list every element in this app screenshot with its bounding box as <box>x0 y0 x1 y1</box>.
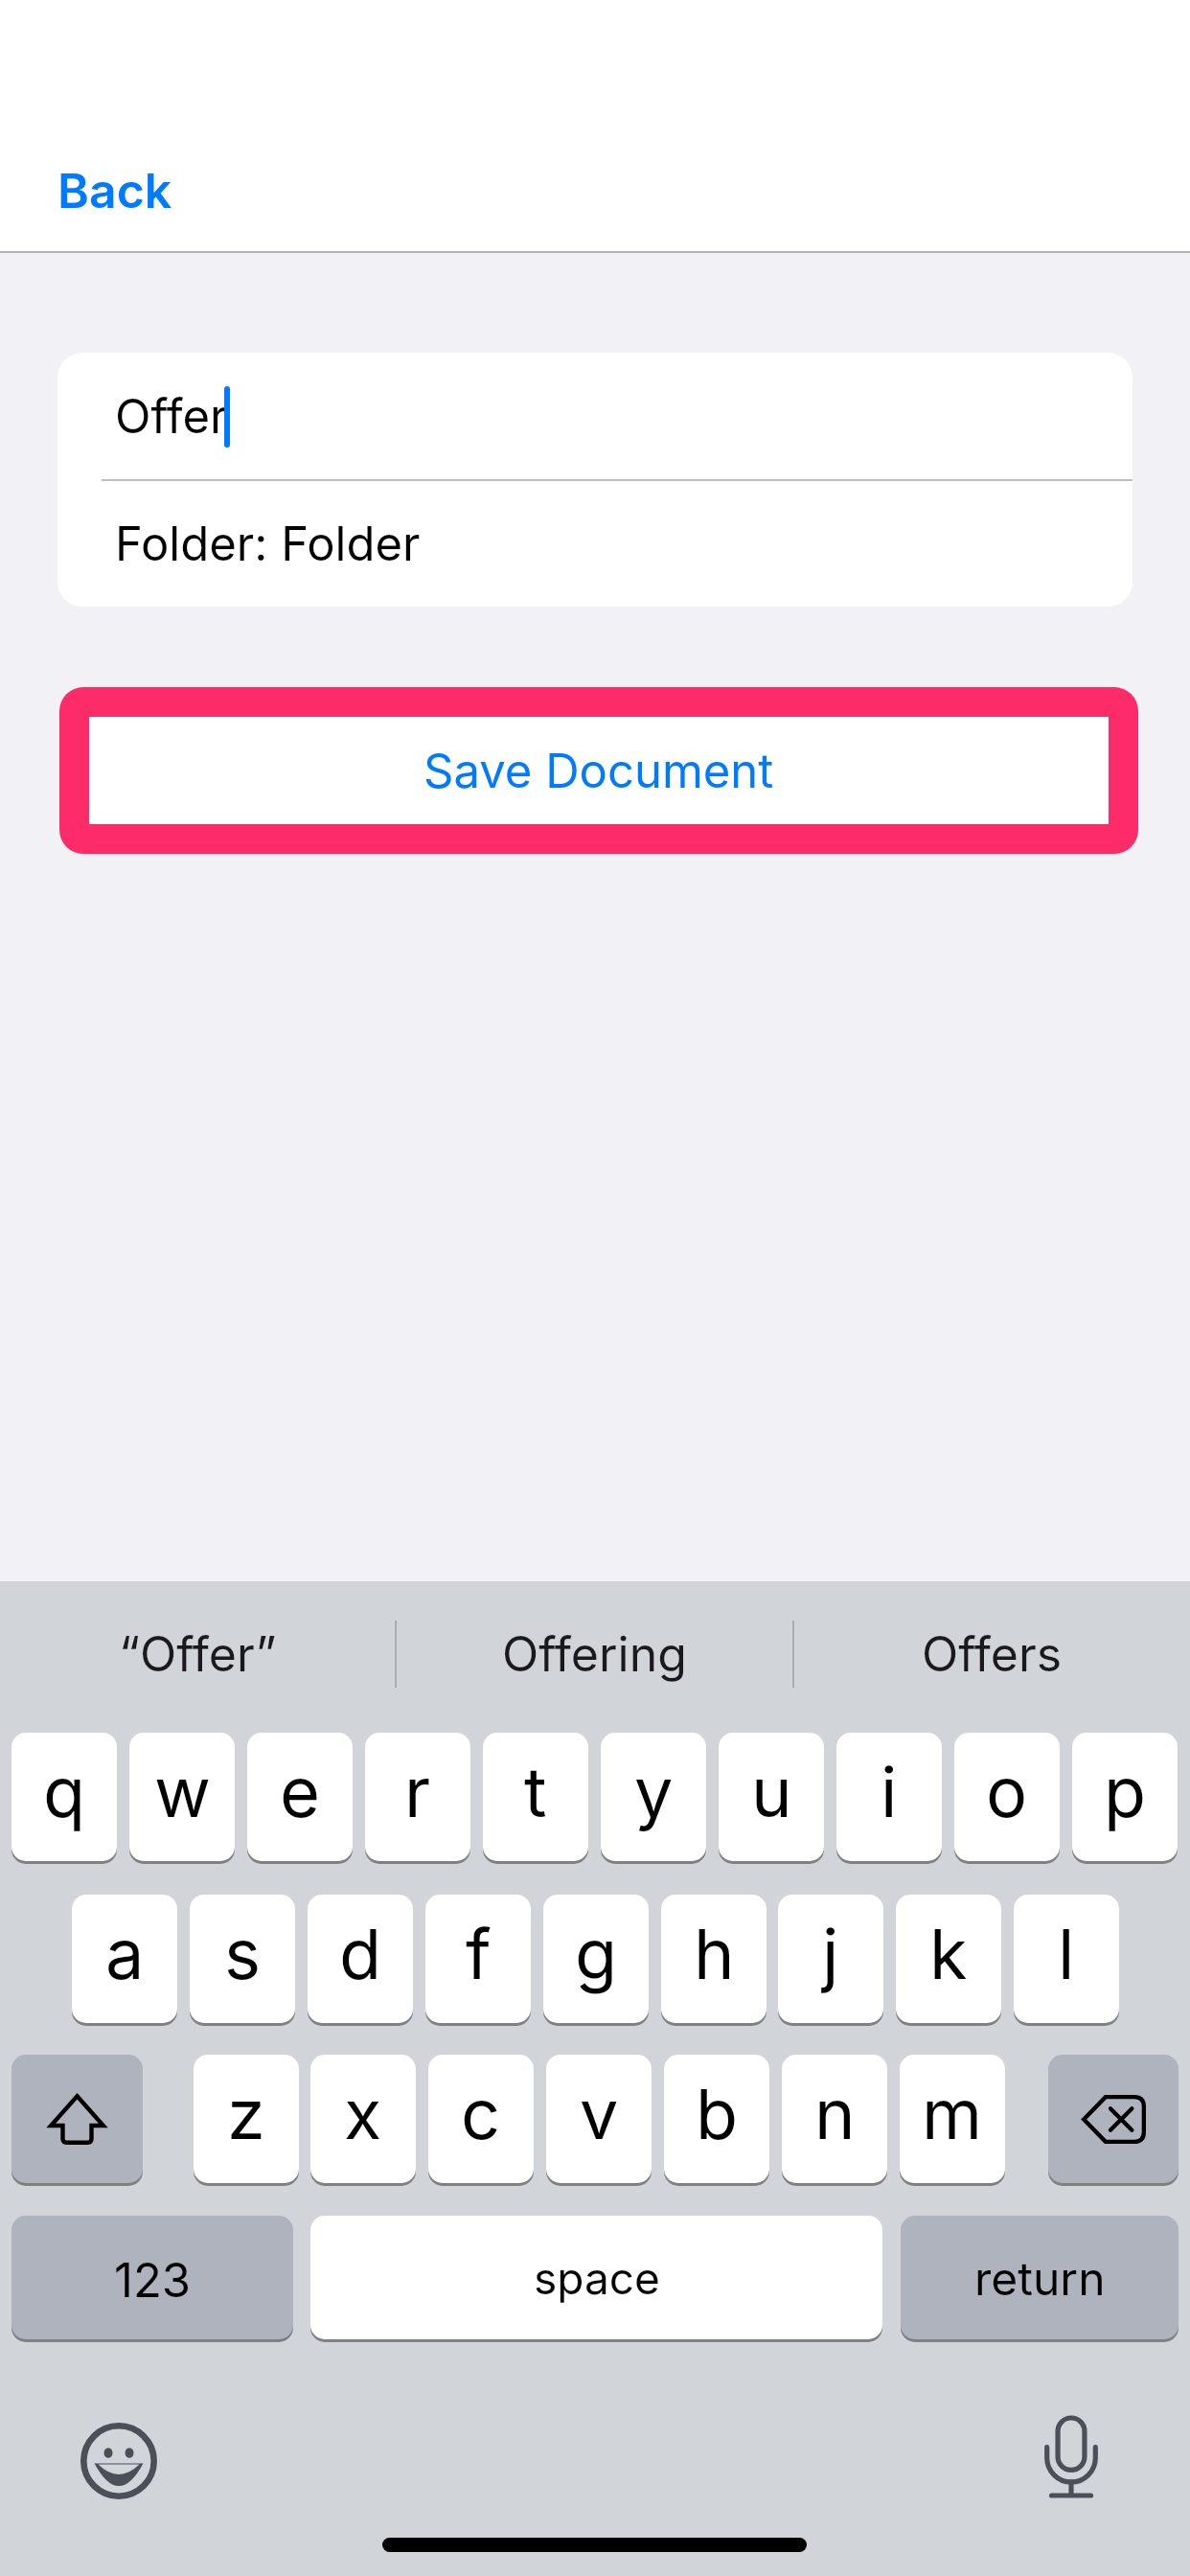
button[interactable]: x <box>310 2055 416 2183</box>
button[interactable]: “Offer” <box>0 1581 395 1727</box>
staticText: Save Document <box>423 743 774 799</box>
staticText: Offering <box>502 1625 687 1683</box>
staticText: c <box>461 2072 501 2155</box>
button[interactable]: z <box>194 2055 299 2183</box>
button[interactable]: i <box>836 1733 942 1861</box>
button[interactable]: Dictation <box>1035 2414 1108 2502</box>
button[interactable]: l <box>1014 1895 1119 2023</box>
staticText: Offer <box>115 388 228 445</box>
button[interactable]: Folder: Folder <box>57 481 1133 607</box>
button[interactable]: Save Document <box>59 687 1138 854</box>
staticText: l <box>1058 1912 1075 1995</box>
button[interactable]: c <box>428 2055 534 2183</box>
button[interactable]: Back <box>44 152 186 229</box>
button[interactable]: Emoji keyboard <box>73 2415 165 2507</box>
staticText: “Offer” <box>119 1625 277 1683</box>
staticText: d <box>339 1912 382 1995</box>
button[interactable]: e <box>247 1733 353 1861</box>
button[interactable]: Offers <box>794 1581 1190 1727</box>
staticText: n <box>814 2072 856 2155</box>
staticText: b <box>696 2072 739 2155</box>
button[interactable]: Shift <box>11 2055 143 2183</box>
staticText: Folder: Folder <box>115 516 421 572</box>
button[interactable]: d <box>308 1895 413 2023</box>
button[interactable]: p <box>1072 1733 1178 1861</box>
staticText: u <box>751 1750 792 1833</box>
button[interactable]: r <box>365 1733 470 1861</box>
staticText: Offers <box>922 1625 1063 1683</box>
staticText: v <box>580 2072 619 2155</box>
button[interactable]: n <box>782 2055 887 2183</box>
staticText: i <box>881 1750 898 1833</box>
button[interactable]: m <box>900 2055 1005 2183</box>
staticText: j <box>822 1912 839 1995</box>
staticText: return <box>974 2250 1106 2306</box>
button[interactable]: b <box>664 2055 769 2183</box>
staticText: a <box>105 1912 145 1995</box>
staticText: space <box>534 2251 660 2305</box>
button[interactable]: s <box>190 1895 295 2023</box>
staticText: z <box>227 2072 265 2155</box>
button[interactable]: return <box>901 2216 1179 2339</box>
staticText: q <box>43 1750 86 1833</box>
staticText: m <box>922 2072 983 2155</box>
staticText: o <box>986 1750 1028 1833</box>
button[interactable]: q <box>11 1733 117 1861</box>
button[interactable]: k <box>896 1895 1001 2023</box>
button[interactable]: space <box>310 2216 882 2339</box>
button[interactable]: h <box>661 1895 767 2023</box>
button[interactable]: Backspace <box>1048 2055 1179 2183</box>
button[interactable]: u <box>719 1733 824 1861</box>
staticText: p <box>1104 1750 1147 1833</box>
staticText: w <box>154 1750 211 1833</box>
button[interactable]: f <box>425 1895 531 2023</box>
staticText: 123 <box>114 2252 192 2309</box>
button[interactable]: 123 <box>11 2216 293 2339</box>
button[interactable]: Offer <box>57 353 1133 479</box>
button[interactable]: y <box>601 1733 706 1861</box>
staticText: s <box>224 1912 262 1995</box>
button[interactable]: w <box>129 1733 235 1861</box>
staticText: Back <box>57 162 172 219</box>
button[interactable]: o <box>954 1733 1060 1861</box>
button[interactable]: t <box>483 1733 588 1861</box>
staticText: h <box>694 1912 735 1995</box>
button[interactable]: j <box>778 1895 883 2023</box>
button[interactable]: v <box>546 2055 652 2183</box>
staticText: r <box>404 1750 431 1833</box>
staticText: e <box>280 1750 320 1833</box>
staticText: k <box>929 1912 968 1995</box>
staticText: f <box>466 1912 492 1995</box>
button[interactable]: g <box>543 1895 649 2023</box>
button[interactable]: a <box>72 1895 177 2023</box>
staticText: t <box>524 1750 547 1833</box>
staticText: g <box>575 1912 618 1995</box>
staticText: y <box>634 1750 674 1833</box>
staticText: x <box>344 2072 382 2155</box>
button[interactable]: Offering <box>397 1581 792 1727</box>
